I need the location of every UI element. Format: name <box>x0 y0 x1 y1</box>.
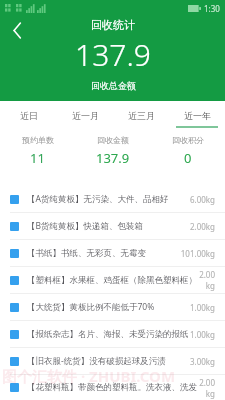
staticText: 回收金额 <box>97 135 129 145</box>
staticText: 预约单数 <box>22 135 54 145</box>
button[interactable]: 近日 <box>0 101 57 130</box>
staticText: 6.00kg <box>189 194 215 205</box>
button[interactable]: 预约单数 <box>0 130 75 172</box>
staticText: 0 <box>184 149 192 167</box>
staticText: 3.00kg <box>189 356 215 367</box>
button[interactable]: 【花塑料瓶】带颜色的塑料瓶。洗衣液、洗发 <box>0 375 225 400</box>
button[interactable]: 回收积分 <box>150 130 225 172</box>
staticText: 近一月 <box>72 110 99 121</box>
staticText: 101.00kg <box>180 248 215 259</box>
staticText: 【大统货】黄板比例不能低于70% <box>27 301 155 313</box>
staticText: 图个汇软件 · ZHUBI.COM <box>2 366 176 386</box>
staticText: 【旧衣服-统货】没有破损起球及污渍 <box>27 355 166 367</box>
staticText: 【花塑料瓶】带颜色的塑料瓶。洗衣液、洗发 <box>27 382 197 393</box>
staticText: 11 <box>30 149 45 167</box>
staticText: 回收总金额 <box>91 80 136 91</box>
staticText: 1.00kg <box>189 302 215 313</box>
staticText: 近一年 <box>184 110 211 121</box>
button[interactable]: 【书纸】书纸、无彩页、无霉变 <box>0 240 225 266</box>
button[interactable]: 【旧衣服-统货】没有破损起球及污渍 <box>0 348 225 374</box>
staticText: 回收积分 <box>172 135 204 145</box>
button[interactable]: 近一月 <box>57 101 113 130</box>
staticText: 1:30 <box>204 3 220 14</box>
staticText: 1.00kg <box>189 329 215 340</box>
staticText: 2.00kg <box>189 221 215 232</box>
staticText: 回收统计 <box>91 18 135 32</box>
staticText: 2.00kg <box>197 269 215 291</box>
staticText: 【塑料框】水果框、鸡蛋框（除黑色塑料框） <box>27 275 197 286</box>
staticText: 近日 <box>20 110 38 121</box>
staticText: 137.9 <box>96 149 130 167</box>
button[interactable]: 近一年 <box>169 101 225 130</box>
button[interactable]: Back <box>4 17 30 43</box>
button[interactable]: 【A货纯黄板】无污染、大件、品相好 <box>0 186 225 212</box>
staticText: 近三月 <box>128 110 155 121</box>
staticText: 2.00kg <box>197 377 215 399</box>
button[interactable]: 回收金额 <box>75 130 150 172</box>
button[interactable]: 近三月 <box>113 101 169 130</box>
staticText: 137.9 <box>75 34 151 75</box>
staticText: 【书纸】书纸、无彩页、无霉变 <box>27 248 146 259</box>
staticText: 【报纸杂志】名片、海报、未受污染的报纸 <box>27 329 189 340</box>
button[interactable]: 【B货纯黄板】快递箱、包装箱 <box>0 213 225 239</box>
staticText: 【B货纯黄板】快递箱、包装箱 <box>27 220 144 232</box>
button[interactable]: 【报纸杂志】名片、海报、未受污染的报纸 <box>0 321 225 347</box>
button[interactable]: 【塑料框】水果框、鸡蛋框（除黑色塑料框） <box>0 267 225 293</box>
button[interactable]: 【大统货】黄板比例不能低于70% <box>0 294 225 320</box>
staticText: 【A货纯黄板】无污染、大件、品相好 <box>27 193 169 205</box>
